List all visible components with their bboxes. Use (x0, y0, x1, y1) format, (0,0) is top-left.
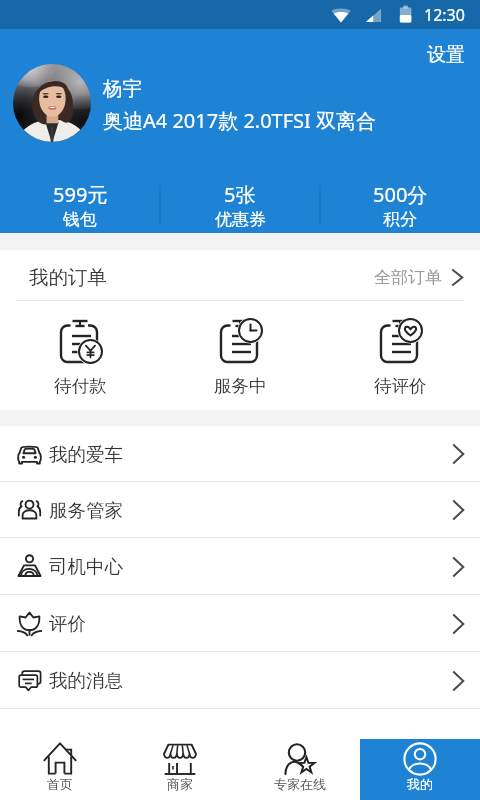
staticText: 我的订单 (29, 265, 107, 290)
staticText: 评价 (49, 612, 86, 635)
staticText: 500分 (373, 181, 428, 208)
button[interactable]: 待付款 (0, 301, 160, 410)
button[interactable]: 599元 (0, 181, 160, 229)
button[interactable]: 5张 (160, 181, 320, 229)
staticText: 我的消息 (49, 669, 123, 692)
staticText: 奥迪A4 2017款 2.0TFSI 双离合 (103, 107, 377, 134)
staticText: 杨宇 (103, 76, 142, 101)
button[interactable]: 服务管家 (0, 482, 480, 538)
staticText: 我的爱车 (49, 443, 123, 466)
button[interactable]: 首页 (0, 739, 120, 800)
staticText: 5张 (224, 181, 256, 208)
button[interactable]: 设置 (421, 40, 471, 70)
staticText: 599元 (53, 181, 108, 208)
button[interactable]: 500分 (320, 181, 480, 229)
staticText: 专家在线 (274, 776, 326, 792)
staticText: 优惠券 (215, 209, 266, 229)
button[interactable]: 评价 (0, 595, 480, 652)
button[interactable]: 商家 (120, 739, 240, 800)
staticText: 12:30 (424, 4, 465, 26)
staticText: 全部订单 (374, 267, 442, 288)
button[interactable]: 我的订单 (0, 250, 480, 304)
staticText: 钱包 (63, 209, 97, 229)
button[interactable]: 我的爱车 (0, 426, 480, 482)
button[interactable]: 服务中 (160, 301, 320, 410)
button[interactable]: 我的 (360, 739, 480, 800)
staticText: 设置 (427, 43, 465, 67)
button[interactable]: 待评价 (320, 301, 480, 410)
button[interactable]: 用户头像 (13, 64, 91, 142)
button[interactable]: 专家在线 (240, 739, 360, 800)
staticText: 待评价 (374, 375, 427, 397)
staticText: 首页 (47, 776, 73, 792)
button[interactable]: 我的消息 (0, 652, 480, 709)
staticText: 服务管家 (49, 499, 123, 522)
staticText: 服务中 (214, 375, 267, 397)
staticText: 我的 (407, 776, 433, 792)
button[interactable]: 司机中心 (0, 538, 480, 595)
staticText: 商家 (167, 776, 193, 792)
staticText: 积分 (383, 209, 417, 229)
staticText: 司机中心 (49, 555, 123, 578)
staticText: 待付款 (54, 375, 107, 397)
